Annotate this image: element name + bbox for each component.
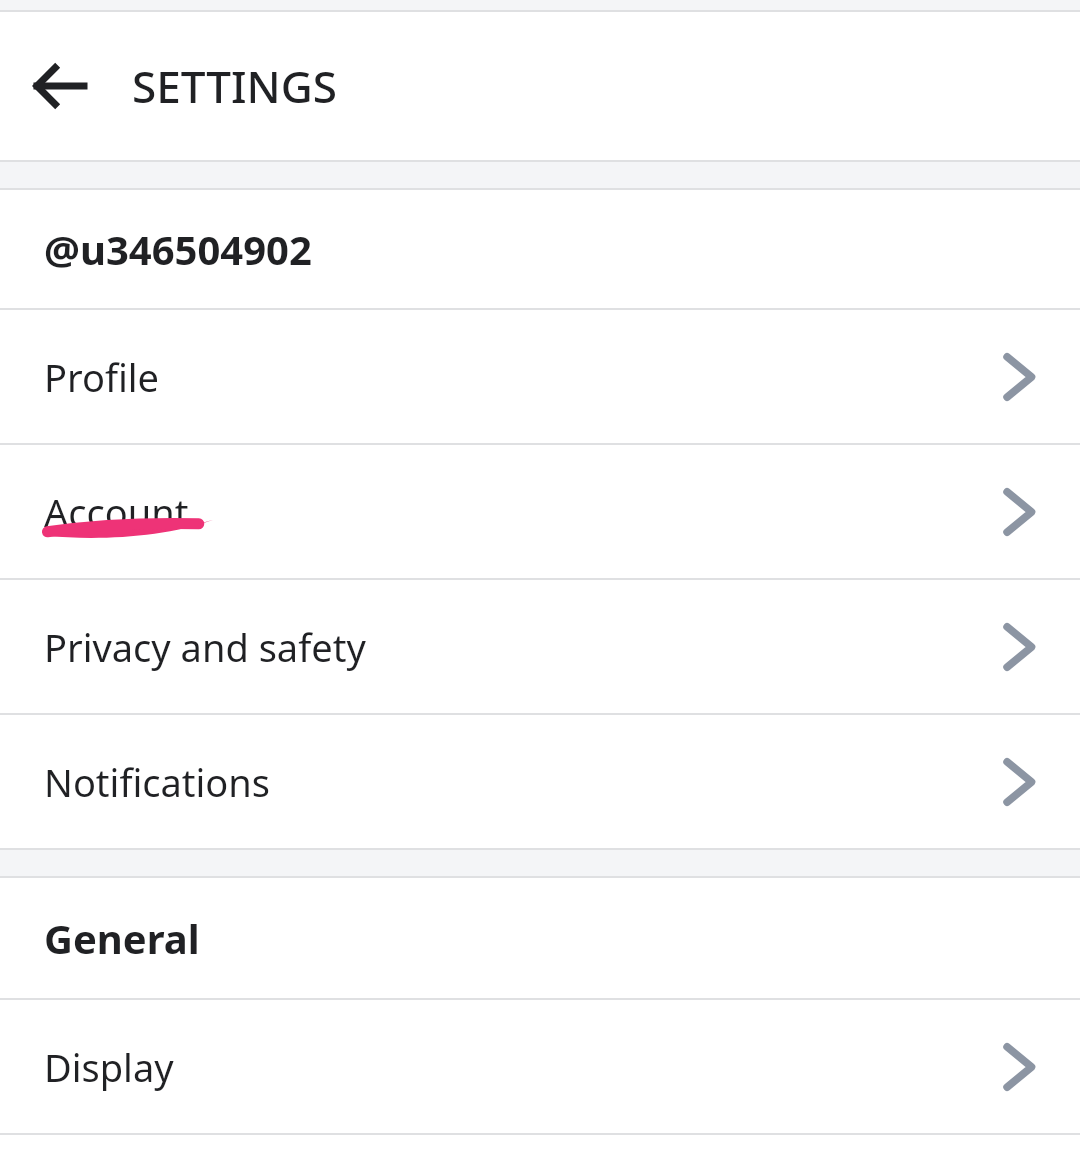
button[interactable]: Profile xyxy=(0,310,1080,443)
staticText: General xyxy=(44,911,200,965)
staticText: Display xyxy=(44,1041,174,1093)
staticText: @u346504902 xyxy=(44,222,312,276)
staticText: SETTINGS xyxy=(132,56,337,116)
staticText: Notifications xyxy=(44,756,271,808)
button[interactable]: Display xyxy=(0,1000,1080,1133)
staticText: Profile xyxy=(44,351,160,403)
button[interactable]: Back xyxy=(20,46,100,126)
staticText: Account xyxy=(44,486,189,538)
button[interactable]: Notifications xyxy=(0,715,1080,848)
staticText: Privacy and safety xyxy=(44,621,366,673)
button[interactable]: Account xyxy=(0,445,1080,578)
button[interactable]: @u346504902 xyxy=(0,190,1080,308)
button[interactable]: Privacy and safety xyxy=(0,580,1080,713)
